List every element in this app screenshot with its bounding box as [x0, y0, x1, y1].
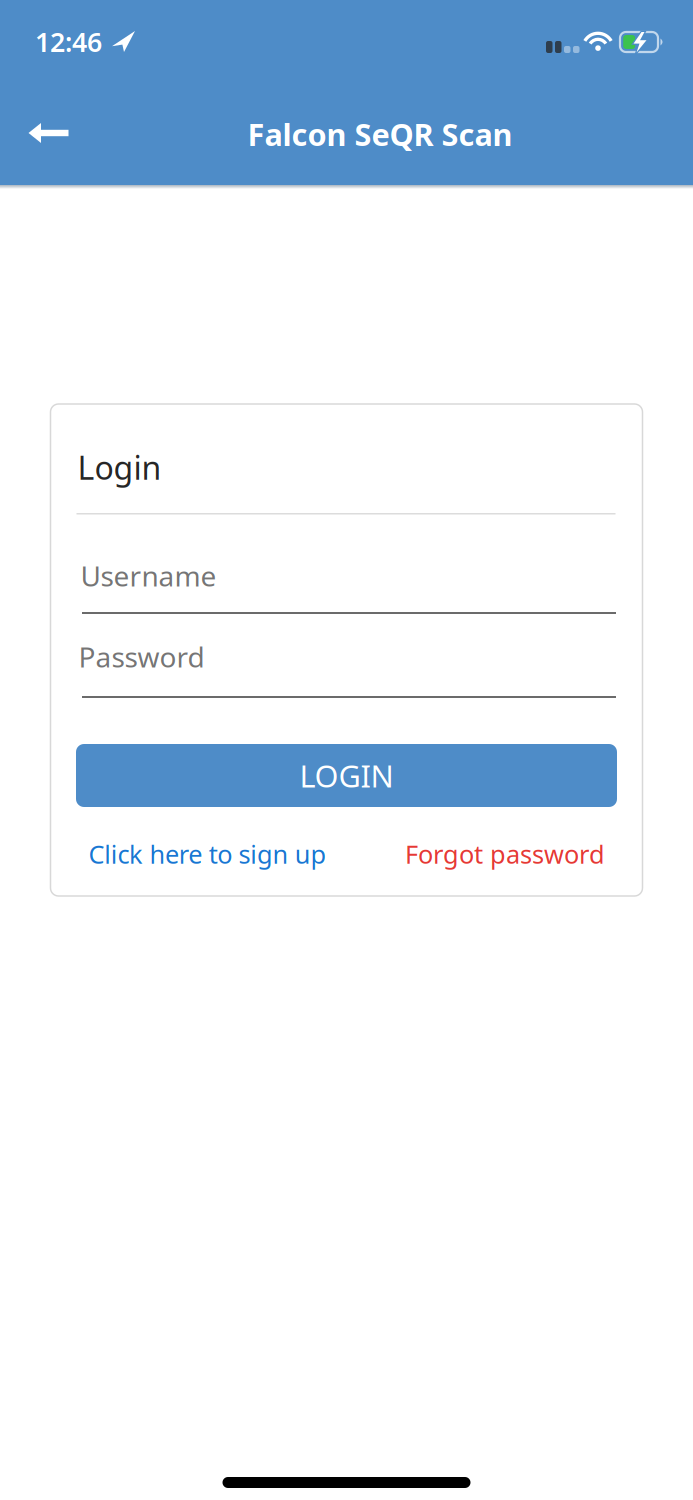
button[interactable] [16, 111, 80, 155]
staticText: Username [80, 557, 216, 594]
staticText: Password [78, 638, 204, 675]
staticText: Login [77, 446, 161, 488]
button[interactable]: LOGIN [76, 744, 617, 807]
staticText: Falcon SeQR Scan [247, 114, 512, 154]
staticText: 12:46 [35, 24, 102, 59]
button[interactable]: Forgot password [405, 837, 605, 871]
staticText: Click here to sign up [88, 837, 326, 871]
staticText: Forgot password [405, 837, 605, 871]
button[interactable]: Click here to sign up [88, 837, 326, 871]
staticText: LOGIN [299, 755, 393, 796]
